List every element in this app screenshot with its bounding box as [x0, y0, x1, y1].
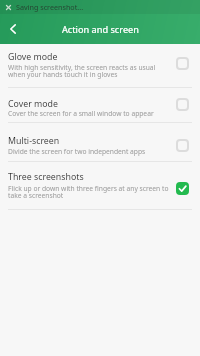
staticText: Cover the screen for a small window to a…: [8, 109, 154, 118]
button[interactable]: Glove mode: [0, 44, 200, 87]
staticText: Action and screen: [62, 23, 139, 36]
button[interactable]: [176, 57, 189, 70]
button[interactable]: [176, 98, 189, 111]
staticText: With high sensitivity, the screen reacts…: [8, 63, 156, 72]
staticText: Flick up or down with three fingers at a…: [8, 184, 169, 193]
staticText: Glove mode: [8, 51, 58, 63]
staticText: Saving screenshot...: [16, 2, 84, 12]
button[interactable]: [176, 182, 189, 195]
staticText: take a screenshot: [8, 191, 64, 200]
button[interactable]: Three screenshots: [0, 162, 200, 209]
button[interactable]: Multi-screen: [0, 123, 200, 161]
staticText: Three screenshots: [8, 171, 84, 183]
staticText: Cover mode: [8, 98, 58, 110]
button[interactable]: Cover mode: [0, 88, 200, 122]
button[interactable]: [176, 139, 189, 152]
button[interactable]: [3, 18, 23, 40]
staticText: Divide the screen for two independent ap…: [8, 147, 146, 156]
staticText: when your hands touch it in gloves: [8, 70, 118, 79]
staticText: Multi-screen: [8, 135, 60, 147]
